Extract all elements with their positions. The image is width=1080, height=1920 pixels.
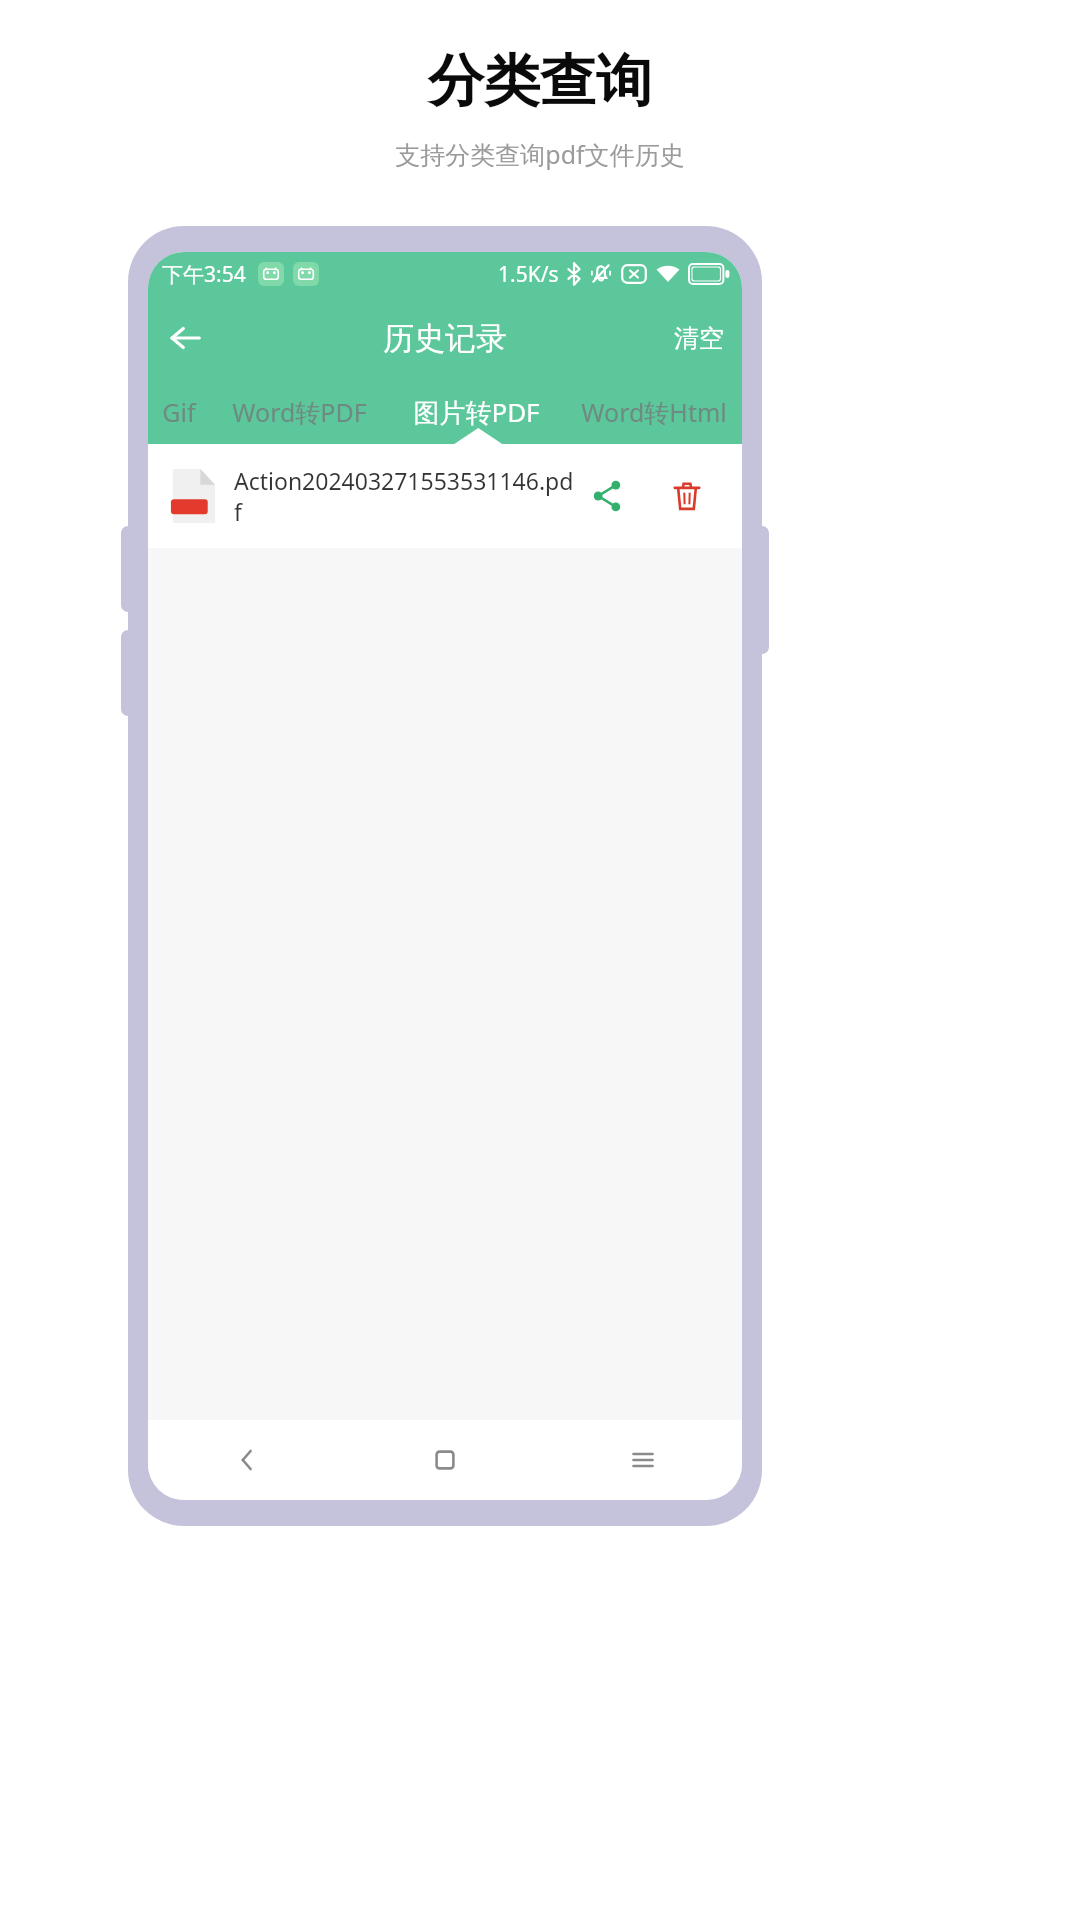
staticText: 图片转PDF [413, 394, 540, 430]
button[interactable]: 图片转PDF [388, 380, 565, 444]
button[interactable]: Word转PDF [210, 380, 388, 444]
staticText: 清空 [674, 323, 724, 354]
staticText: Word转PDF [232, 395, 367, 429]
button[interactable]: Share [576, 465, 638, 527]
button[interactable]: Home [346, 1420, 544, 1500]
staticText: 下午3:54 [162, 260, 246, 289]
button[interactable]: Back [148, 1420, 346, 1500]
staticText: 1.5K/s [498, 260, 559, 289]
button[interactable]: Word转Html [565, 380, 742, 444]
button[interactable]: Recents [544, 1420, 742, 1500]
button[interactable]: Gif [148, 380, 210, 444]
button[interactable]: 清空 [660, 313, 738, 364]
staticText: Word转Html [581, 395, 727, 429]
button[interactable]: Action202403271553531146.pdf [148, 444, 742, 548]
staticText: 历史记录 [383, 319, 507, 358]
staticText: Gif [162, 395, 196, 429]
staticText: Action202403271553531146.pdf [234, 465, 576, 527]
button[interactable]: Back [154, 307, 216, 369]
staticText: 分类查询 [428, 46, 652, 117]
button[interactable]: Delete [656, 465, 718, 527]
staticText: 支持分类查询pdf文件历史 [395, 137, 685, 171]
